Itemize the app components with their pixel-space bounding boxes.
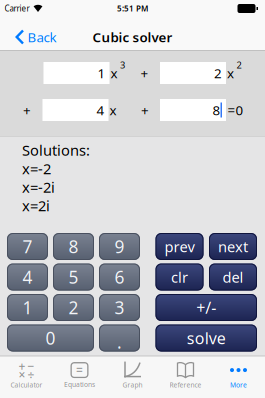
staticText: Graph bbox=[122, 381, 142, 389]
staticText: 2 bbox=[214, 64, 222, 82]
staticText: 4 bbox=[96, 101, 104, 119]
staticText: +/- bbox=[196, 297, 216, 318]
staticText: + bbox=[18, 358, 25, 374]
staticText: 4 bbox=[22, 265, 32, 288]
staticText: + bbox=[23, 101, 31, 119]
staticText: 9 bbox=[114, 235, 124, 258]
button[interactable]: 1 bbox=[43, 62, 109, 84]
button[interactable]: prev bbox=[155, 233, 203, 260]
button[interactable]: 6 bbox=[99, 263, 140, 290]
staticText: . bbox=[117, 330, 122, 353]
button[interactable]: + bbox=[0, 354, 53, 396]
button[interactable]: 8 bbox=[53, 233, 94, 260]
button[interactable]: More bbox=[212, 354, 265, 396]
button[interactable]: Graph bbox=[106, 354, 159, 396]
staticText: 2 bbox=[236, 59, 241, 71]
staticText: = bbox=[76, 362, 83, 378]
staticText: 1 bbox=[22, 296, 32, 319]
staticText: 8 bbox=[68, 235, 78, 258]
staticText: 5 bbox=[68, 265, 78, 288]
staticText: x=2i bbox=[22, 196, 50, 215]
staticText: prev bbox=[164, 237, 194, 256]
staticText: x bbox=[109, 101, 116, 119]
button[interactable]: 8 bbox=[160, 99, 226, 121]
staticText: Calculator bbox=[10, 381, 42, 389]
staticText: 1 bbox=[97, 64, 105, 82]
button[interactable]: 4 bbox=[7, 263, 48, 290]
button[interactable]: 2 bbox=[160, 62, 226, 84]
staticText: + bbox=[140, 64, 148, 82]
staticText: 2 bbox=[68, 296, 78, 319]
staticText: 0 bbox=[45, 326, 55, 349]
staticText: =0 bbox=[227, 101, 243, 119]
button[interactable]: solve bbox=[155, 324, 257, 351]
button[interactable]: clr bbox=[155, 263, 203, 290]
button[interactable]: = bbox=[53, 354, 106, 396]
staticText: 3 bbox=[114, 296, 124, 319]
staticText: Reference bbox=[169, 381, 201, 389]
staticText: 5:51 PM bbox=[117, 3, 148, 14]
staticText: 6 bbox=[114, 265, 124, 288]
button[interactable]: 2 bbox=[53, 294, 94, 321]
button[interactable]: next bbox=[209, 233, 257, 260]
staticText: Back bbox=[27, 28, 56, 46]
staticText: x=-2i bbox=[22, 177, 55, 197]
staticText: × bbox=[18, 367, 25, 382]
staticText: More bbox=[230, 381, 247, 389]
staticText: clr bbox=[171, 267, 188, 287]
button[interactable]: 4 bbox=[42, 99, 108, 121]
button[interactable]: Back bbox=[6, 22, 66, 52]
staticText: x bbox=[227, 64, 234, 82]
staticText: x=-2 bbox=[22, 159, 51, 178]
staticText: Carrier bbox=[4, 3, 29, 14]
staticText: del bbox=[222, 267, 243, 287]
staticText: − bbox=[27, 358, 34, 374]
button[interactable]: 9 bbox=[99, 233, 140, 260]
button[interactable]: 3 bbox=[99, 294, 140, 321]
staticText: solve bbox=[187, 327, 226, 349]
button[interactable]: Reference bbox=[159, 354, 212, 396]
staticText: Solutions: bbox=[22, 140, 90, 160]
button[interactable]: 5 bbox=[53, 263, 94, 290]
button[interactable]: 0 bbox=[7, 324, 94, 351]
staticText: Equations bbox=[64, 380, 95, 389]
staticText: + bbox=[141, 101, 149, 119]
staticText: Cubic solver bbox=[92, 28, 172, 46]
button[interactable]: 1 bbox=[7, 294, 48, 321]
staticText: 7 bbox=[22, 235, 32, 258]
staticText: next bbox=[218, 237, 248, 256]
button[interactable]: +/- bbox=[155, 294, 257, 321]
staticText: 8 bbox=[212, 101, 220, 119]
staticText: ÷ bbox=[27, 367, 34, 382]
button[interactable]: 7 bbox=[7, 233, 48, 260]
button[interactable]: del bbox=[209, 263, 257, 290]
staticText: 3 bbox=[120, 59, 125, 71]
button[interactable]: . bbox=[99, 324, 140, 351]
staticText: x bbox=[110, 64, 117, 82]
